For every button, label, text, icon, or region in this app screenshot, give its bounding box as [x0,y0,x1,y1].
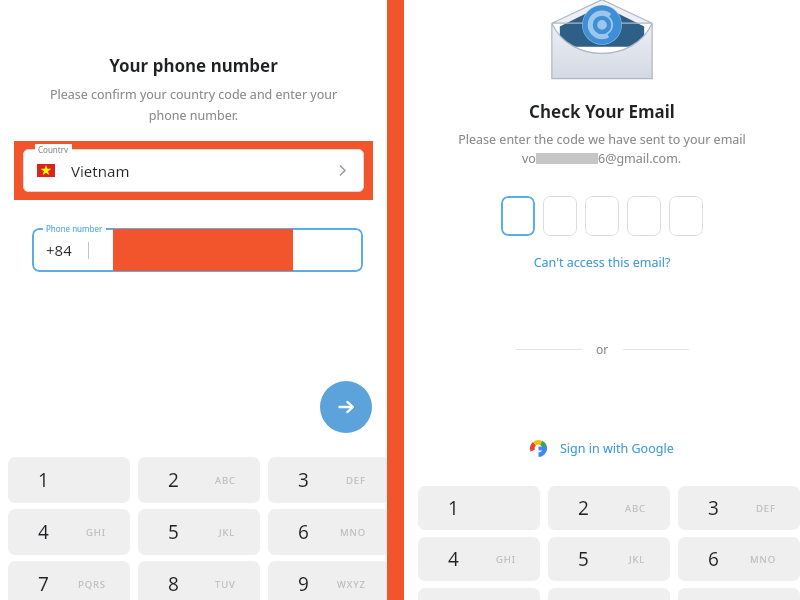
staticText: Your phone number [0,54,387,77]
staticText: 1 [448,495,459,521]
button[interactable]: Code digit 1 [501,196,535,236]
button[interactable]: 2 [548,486,670,530]
staticText: ABC [625,502,646,515]
staticText: 6 [298,519,309,545]
staticText: 7 [38,571,49,597]
button[interactable]: Can't access this email? [404,254,800,271]
button[interactable]: 1 [8,457,130,503]
staticText: JKL [629,553,646,566]
staticText: Please confirm your country code and ent… [20,86,367,123]
button[interactable]: Sign in with Google [404,440,800,457]
staticText: PQRS [78,578,106,591]
button[interactable]: 8 [138,561,260,600]
staticText: JKL [219,526,236,539]
staticText: 1 [38,467,49,493]
staticText: 4 [448,546,459,572]
button[interactable]: 9 [268,561,390,600]
button[interactable]: 6 [268,509,390,555]
button[interactable]: 5 [548,537,670,581]
button[interactable]: 2 [138,457,260,503]
button[interactable]: Code digit 3 [585,196,619,236]
staticText: GHI [496,553,516,566]
staticText: 4 [38,519,49,545]
staticText: 6 [708,546,719,572]
staticText: GHI [86,526,106,539]
staticText: Vietnam [71,161,130,181]
staticText: 2 [168,467,179,493]
staticText: 3 [298,467,309,493]
staticText: WXYZ [337,578,366,591]
staticText: MNO [340,526,366,539]
button[interactable]: Code digit 2 [543,196,577,236]
staticText: +84 [46,240,72,260]
button[interactable]: Next [320,381,372,433]
staticText: Please enter the code we have sent to yo… [404,131,800,148]
button[interactable]: 5 [138,509,260,555]
button[interactable]: 6 [678,537,800,581]
staticText: ABC [215,474,236,487]
staticText: vo [522,150,536,167]
button[interactable]: 4 [418,537,540,581]
staticText: or [596,341,609,357]
staticText: 8 [168,571,179,597]
button[interactable]: 3 [268,457,390,503]
button[interactable]: Code digit 4 [627,196,661,236]
button[interactable]: 4 [8,509,130,555]
staticText: 2 [578,495,589,521]
staticText: DEF [346,474,366,487]
staticText: Phone number [46,223,103,232]
staticText: Check Your Email [404,100,800,123]
staticText: Country [38,144,69,153]
staticText: Sign in with Google [560,440,674,457]
staticText: TUV [215,578,236,591]
staticText: 3 [708,495,719,521]
staticText: 5 [578,546,589,572]
button[interactable]: 3 [678,486,800,530]
staticText: DEF [756,502,776,515]
button[interactable]: 1 [418,486,540,530]
staticText: 9 [298,571,309,597]
button[interactable]: Phone number field [32,228,363,272]
staticText: MNO [750,553,776,566]
staticText: 5 [168,519,179,545]
button[interactable]: 7 [8,561,130,600]
button[interactable]: Country Vietnam [23,149,364,192]
button[interactable]: Code digit 5 [669,196,703,236]
staticText: 6@gmail.com. [598,150,682,167]
